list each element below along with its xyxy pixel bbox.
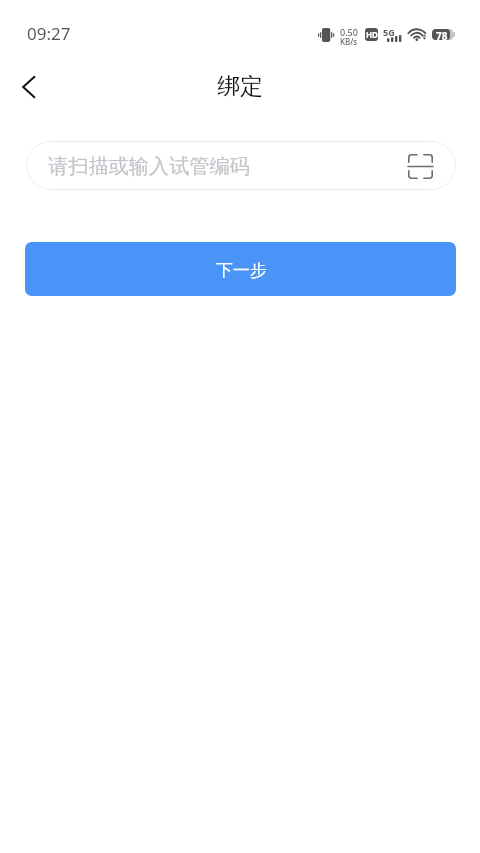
button[interactable]: 请扫描或输入试管编码: [26, 141, 456, 190]
button[interactable]: Scan code: [407, 153, 433, 179]
staticText: HD: [366, 29, 378, 40]
staticText: 下一步: [216, 260, 267, 281]
staticText: 绑定: [217, 72, 263, 101]
staticText: 请扫描或输入试管编码: [48, 154, 250, 179]
staticText: 5G: [383, 26, 395, 38]
staticText: KB/s: [340, 36, 358, 47]
button[interactable]: 下一步: [25, 242, 456, 296]
staticText: 09:27: [27, 22, 71, 45]
button[interactable]: Back: [4, 65, 52, 113]
staticText: 0.50: [340, 26, 358, 38]
staticText: 78: [436, 29, 448, 40]
